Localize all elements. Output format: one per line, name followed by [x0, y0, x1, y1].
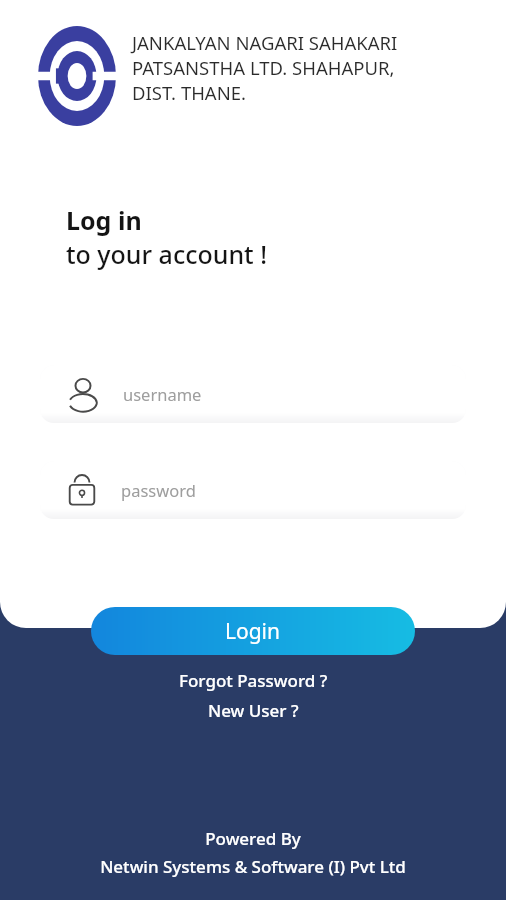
staticText: New User ?	[208, 699, 299, 722]
button[interactable]: Forgot Password ?	[171, 668, 336, 693]
staticText: Log in	[66, 203, 142, 237]
button[interactable]: Login	[91, 607, 415, 655]
button[interactable]: New User ?	[200, 698, 307, 723]
button[interactable]: password	[40, 461, 466, 519]
staticText: DIST. THANE.	[132, 80, 246, 105]
staticText: Netwin Systems & Software (I) Pvt Ltd	[100, 855, 406, 878]
button[interactable]: username	[40, 365, 466, 423]
staticText: Login	[225, 617, 281, 646]
staticText: PATSANSTHA LTD. SHAHAPUR,	[132, 55, 395, 80]
staticText: to your account !	[66, 237, 267, 271]
staticText: username	[123, 383, 202, 405]
staticText: password	[121, 479, 196, 501]
staticText: JANKALYAN NAGARI SAHAKARI	[132, 30, 398, 55]
staticText: Forgot Password ?	[179, 669, 328, 692]
staticText: Powered By	[205, 827, 301, 850]
